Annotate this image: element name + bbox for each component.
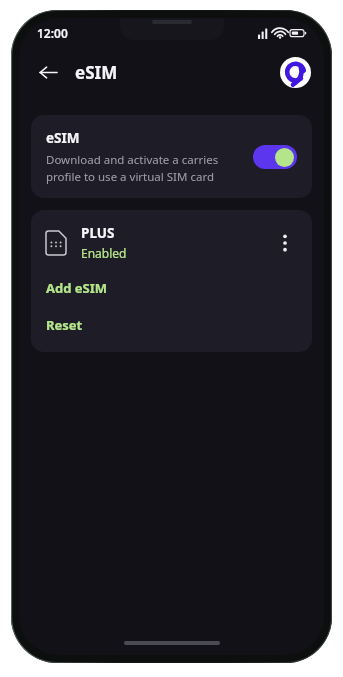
staticText: 12:00 xyxy=(37,25,68,41)
staticText: Reset xyxy=(46,316,83,334)
staticText: eSIM xyxy=(46,129,80,147)
staticText: Download and activate a carries profile … xyxy=(46,152,219,184)
button[interactable]: More options xyxy=(270,228,300,258)
button[interactable]: PLUS xyxy=(46,224,300,261)
staticText: PLUS xyxy=(81,224,115,242)
button[interactable]: Back xyxy=(31,55,65,89)
button[interactable]: App logo xyxy=(278,55,312,89)
button[interactable]: Add eSIM xyxy=(46,279,300,297)
staticText: Add eSIM xyxy=(46,279,108,297)
button[interactable]: eSIM toggle, on xyxy=(253,145,297,169)
staticText: Enabled xyxy=(81,245,127,261)
button[interactable]: eSIM xyxy=(31,115,312,198)
button[interactable]: Reset xyxy=(46,316,300,334)
staticText: eSIM xyxy=(75,61,118,84)
